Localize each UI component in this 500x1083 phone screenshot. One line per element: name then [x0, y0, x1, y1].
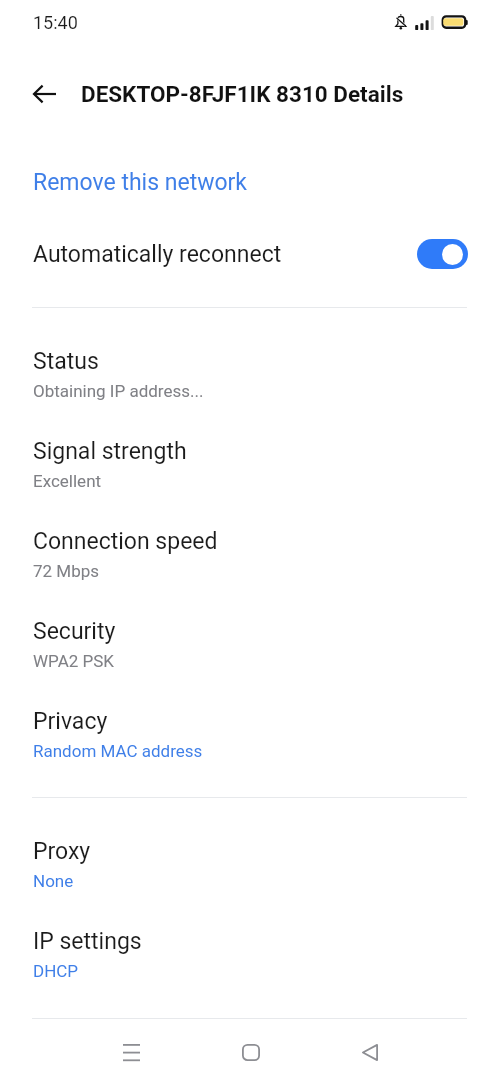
button[interactable]: Home [227, 1028, 275, 1076]
staticText: Privacy [33, 708, 108, 735]
button[interactable]: Remove this network [0, 160, 500, 204]
staticText: None [33, 871, 74, 891]
button[interactable]: Security [0, 614, 500, 688]
staticText: WPA2 PSK [33, 651, 115, 671]
staticText: Connection speed [33, 528, 218, 555]
staticText: Automatically reconnect [33, 241, 282, 268]
staticText: Security [33, 618, 116, 645]
button[interactable]: Privacy [0, 704, 500, 778]
staticText: Obtaining IP address... [33, 381, 204, 401]
button[interactable]: Automatically reconnect [0, 232, 500, 276]
button[interactable]: IP settings [0, 924, 500, 998]
button[interactable]: Back [21, 67, 69, 115]
button[interactable]: Back [346, 1028, 394, 1076]
staticText: 72 Mbps [33, 561, 100, 581]
button[interactable]: Recent apps [107, 1028, 155, 1076]
staticText: 15:40 [33, 12, 78, 33]
staticText: Random MAC address [33, 741, 203, 761]
staticText: DHCP [33, 961, 79, 981]
staticText: Proxy [33, 838, 91, 865]
button[interactable]: Signal strength [0, 434, 500, 508]
button[interactable]: Status [0, 344, 500, 418]
button[interactable]: Automatically reconnect [417, 239, 468, 269]
staticText: Excellent [33, 471, 102, 491]
staticText: Remove this network [33, 169, 248, 196]
staticText: IP settings [33, 928, 142, 955]
button[interactable]: Connection speed [0, 524, 500, 598]
staticText: Signal strength [33, 438, 187, 465]
staticText: Status [33, 348, 99, 375]
button[interactable]: Proxy [0, 834, 500, 908]
staticText: DESKTOP-8FJF1IK 8310 Details [81, 81, 404, 107]
